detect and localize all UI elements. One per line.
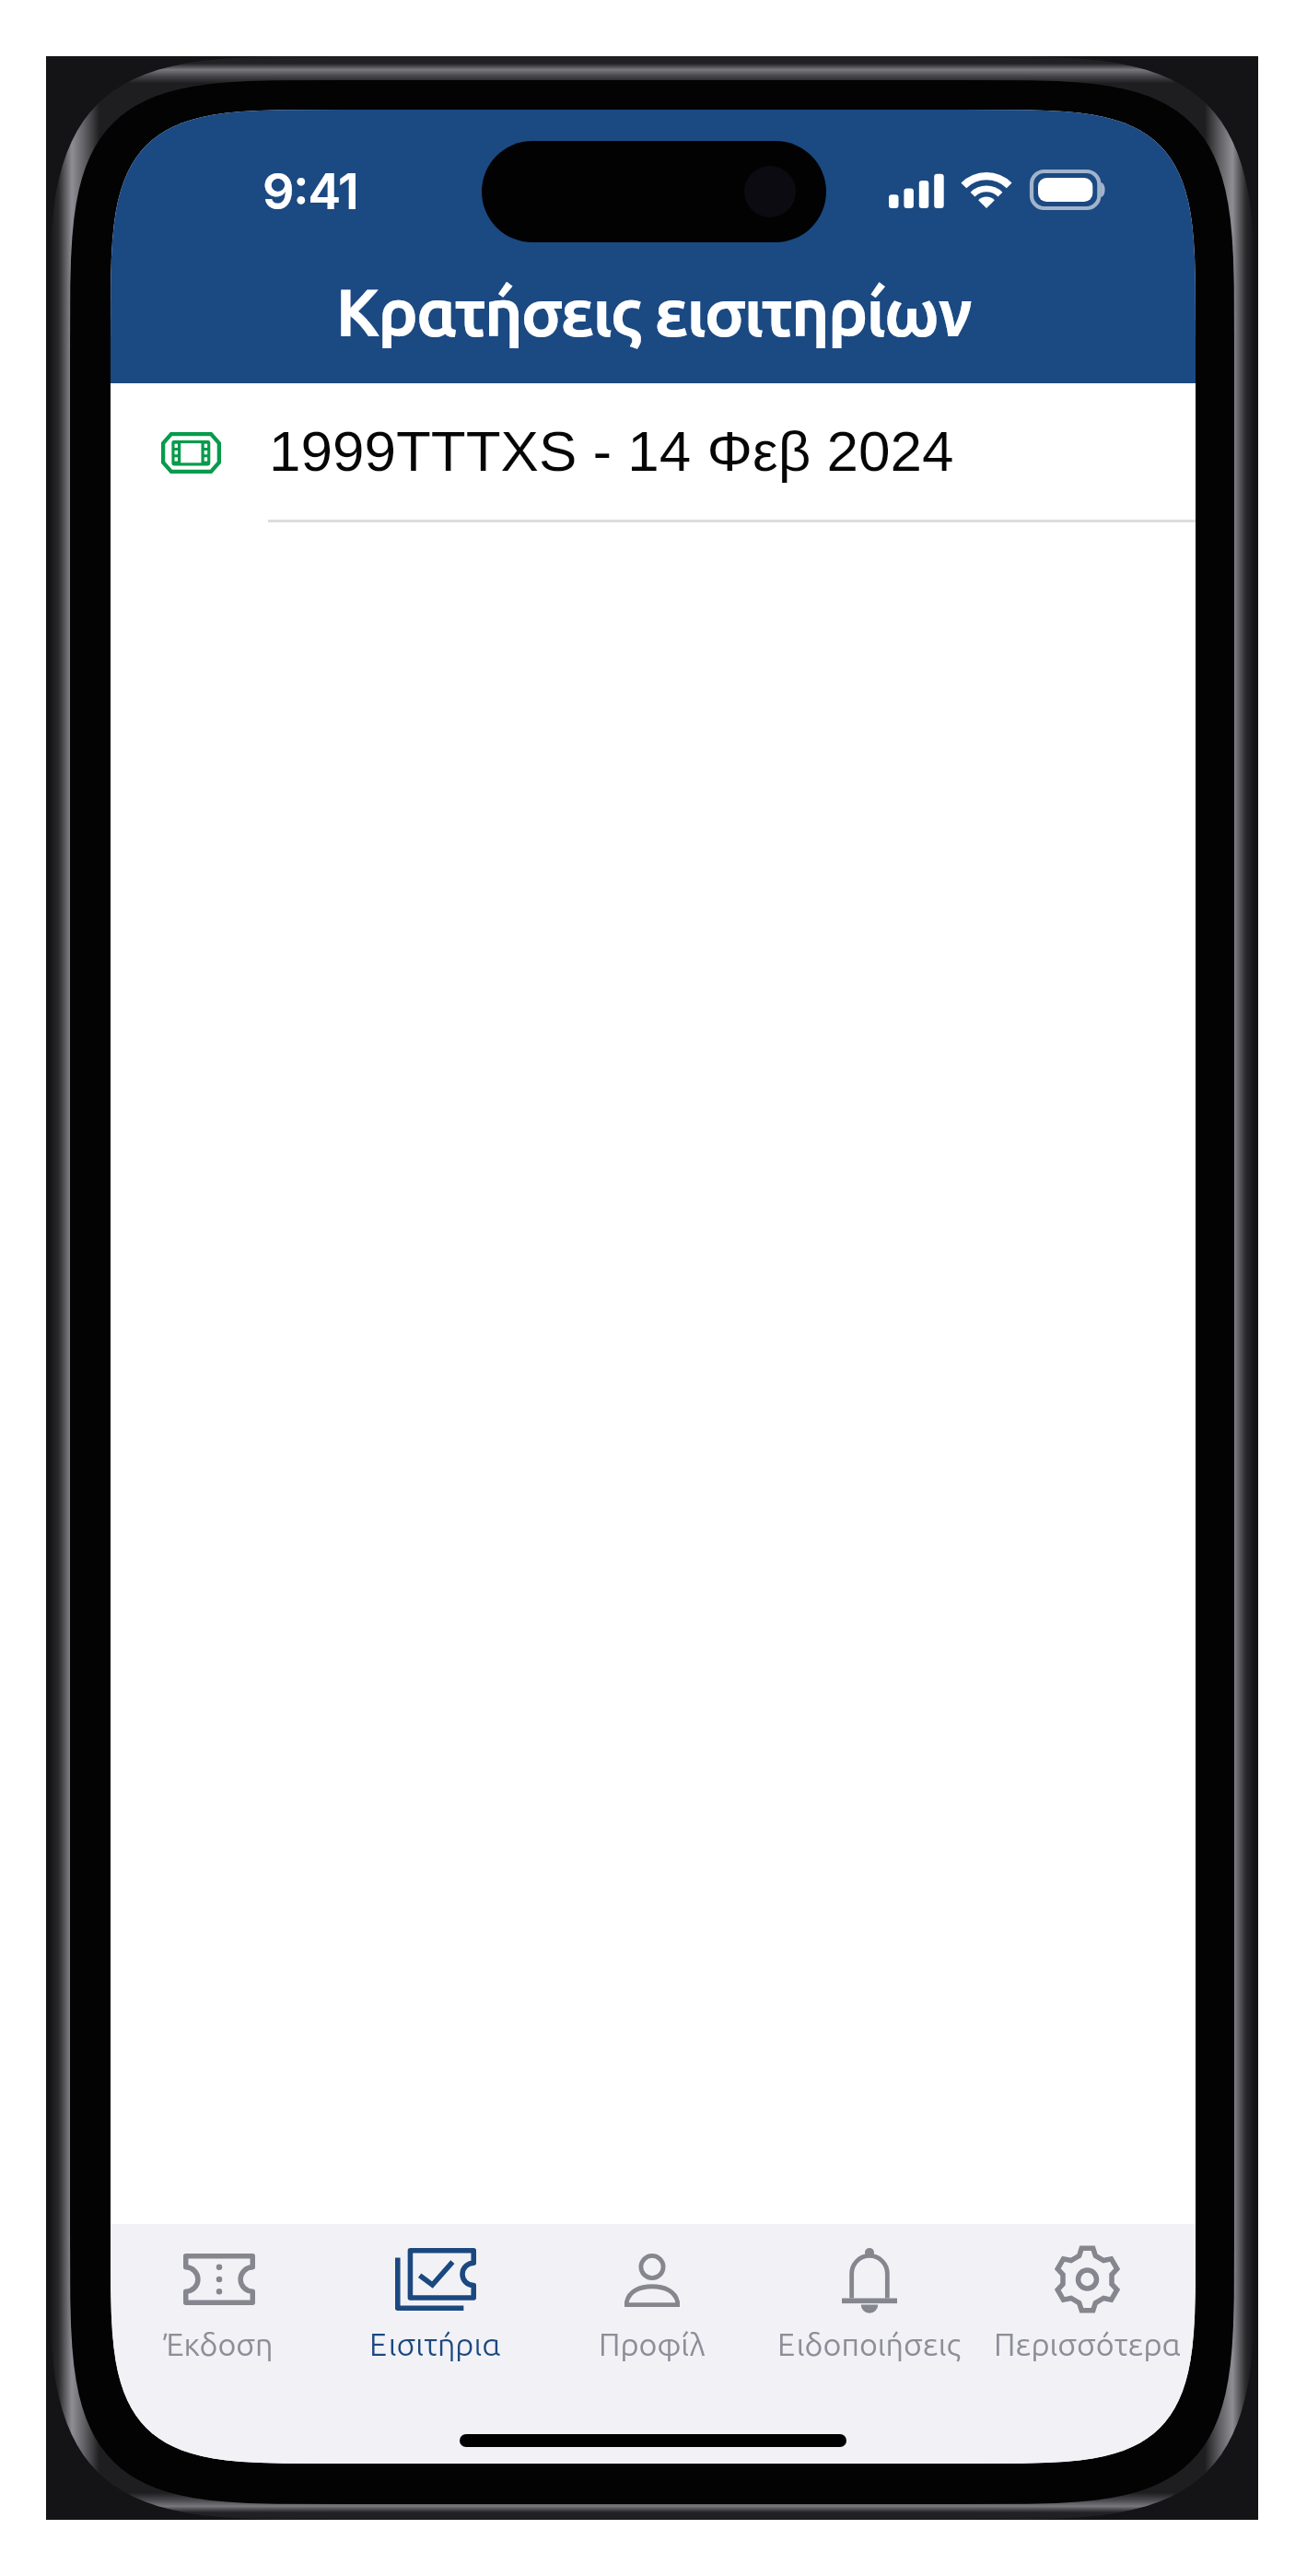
staticText: Προφίλ <box>599 2326 706 2361</box>
staticText: Περισσότερα <box>994 2326 1181 2361</box>
button[interactable]: Issue ticket <box>111 2224 327 2464</box>
staticText: Εισιτήρια <box>369 2326 501 2361</box>
button[interactable]: Profile <box>543 2224 761 2464</box>
button[interactable]: 1999TTTXS - 14 Φεβ 2024 <box>111 383 1196 522</box>
staticText: 9:41 <box>263 161 358 221</box>
button[interactable]: Tickets <box>327 2224 543 2464</box>
other: Notifications <box>842 2245 897 2313</box>
button[interactable]: More <box>978 2224 1196 2464</box>
other: More <box>1053 2245 1122 2313</box>
other: Tickets <box>395 2248 476 2311</box>
staticText: Ειδοποιήσεις <box>777 2326 962 2361</box>
other: Profile <box>624 2254 680 2307</box>
staticText: Έκδοση <box>164 2326 274 2361</box>
staticText: 1999TTTXS - 14 Φεβ 2024 <box>269 419 954 483</box>
other: Issue ticket <box>183 2254 255 2305</box>
button[interactable]: Notifications <box>761 2224 978 2464</box>
staticText: Κρατήσεις εισιτηρίων <box>111 275 1196 349</box>
